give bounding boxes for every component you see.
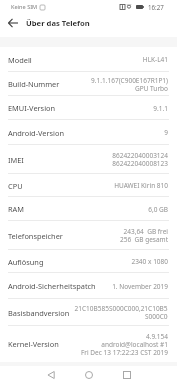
button[interactable]: Recent apps <box>112 366 142 384</box>
staticText: 9.1.1.167(C900E167R1P1) GPU Turbo <box>91 76 168 93</box>
staticText: 1. November 2019 <box>112 282 168 291</box>
staticText: HLK-L41 <box>142 55 168 64</box>
button[interactable]: Build-Nummer <box>0 72 177 96</box>
button[interactable]: Telefonspeicher <box>0 221 177 250</box>
staticText: IMEI <box>8 155 24 165</box>
staticText: 21C10B585S000C000,21C10B585 S000C000 <box>74 304 168 321</box>
button[interactable]: Android-Version <box>0 120 177 145</box>
button[interactable]: Back <box>0 14 26 32</box>
button[interactable]: RAM <box>0 197 177 221</box>
button[interactable]: IMEI <box>0 145 177 174</box>
button[interactable]: Home <box>74 366 104 384</box>
staticText: Build-Nummer <box>8 79 60 89</box>
button[interactable]: Kernel-Version <box>0 326 177 362</box>
button[interactable]: CPU <box>0 174 177 197</box>
button[interactable]: Auflösung <box>0 250 177 273</box>
staticText: HUAWEI Kirin 810 <box>114 181 168 190</box>
staticText: Modell <box>8 55 32 65</box>
staticText: 243,64 GB frei 256 GB gesamt <box>119 227 168 244</box>
staticText: 4.9.154 android@localhost #1 Fri Dec 13 … <box>80 332 168 357</box>
button[interactable]: Back <box>36 366 66 384</box>
staticText: EMUI-Version <box>8 103 56 113</box>
staticText: 2340 x 1080 <box>131 257 168 266</box>
staticText: 16:27 <box>148 3 164 11</box>
staticText: Android-Version <box>8 128 65 138</box>
button[interactable]: Basisbandversion <box>0 299 177 326</box>
button[interactable]: EMUI-Version <box>0 96 177 120</box>
staticText: CPU <box>8 181 23 191</box>
staticText: Über das Telefon <box>26 18 90 28</box>
staticText: Telefonspeicher <box>8 231 63 241</box>
staticText: Kernel-Version <box>8 339 59 349</box>
button[interactable]: Android-Sicherheitspatch <box>0 273 177 299</box>
staticText: Auflösung <box>8 257 44 267</box>
staticText: 9 <box>164 128 168 137</box>
button[interactable]: Modell <box>0 47 177 72</box>
staticText: 862422040003124 862422040008123 <box>112 151 168 168</box>
staticText: Android-Sicherheitspatch <box>8 281 96 291</box>
staticText: 6,0 GB <box>148 205 168 214</box>
staticText: Basisbandversion <box>8 308 70 318</box>
staticText: 9.1.1 <box>153 104 168 113</box>
staticText: RAM <box>8 204 25 214</box>
staticText: Keine SIM <box>11 3 38 11</box>
